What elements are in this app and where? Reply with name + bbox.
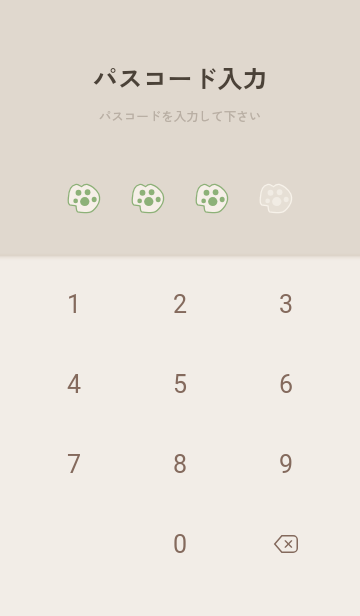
button[interactable]: 5 [144,348,216,420]
staticText: 8 [173,450,188,479]
other: Passcode digit entered [68,184,100,213]
staticText: 7 [67,450,82,479]
button[interactable]: Backspace [250,508,322,580]
other: Passcode digit empty [260,184,292,213]
button[interactable]: 7 [38,428,110,500]
staticText: 6 [279,370,294,399]
staticText: 9 [279,450,294,479]
button[interactable]: 8 [144,428,216,500]
button[interactable]: 9 [250,428,322,500]
other: Passcode digit entered [132,184,164,213]
button[interactable]: 4 [38,348,110,420]
button[interactable]: 3 [250,268,322,340]
staticText: 0 [173,530,188,559]
staticText: 1 [67,290,82,319]
button[interactable]: 2 [144,268,216,340]
staticText: 2 [173,290,188,319]
staticText: パスコード入力 [0,59,360,95]
staticText: パスコードを入力して下さい [0,106,360,124]
button[interactable]: 1 [38,268,110,340]
other: Passcode digit entered [196,184,228,213]
staticText: 4 [67,370,82,399]
button[interactable]: 6 [250,348,322,420]
staticText: 3 [279,290,294,319]
staticText: 5 [173,370,188,399]
button[interactable]: 0 [144,508,216,580]
